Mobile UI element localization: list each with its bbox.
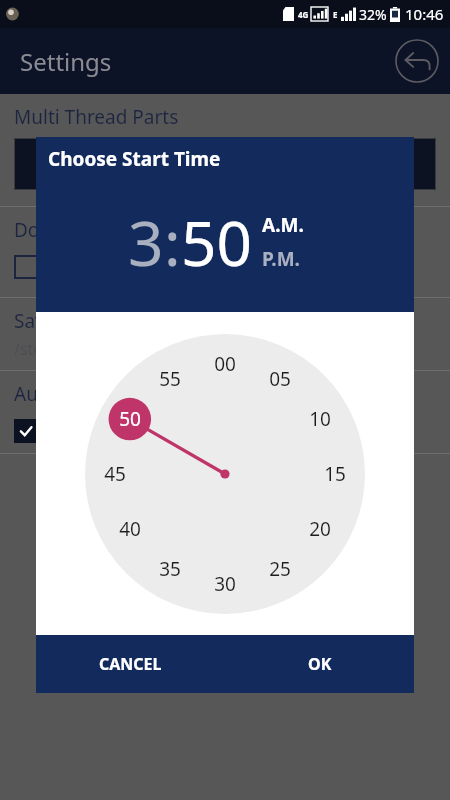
- staticText: 32%: [359, 5, 387, 24]
- staticText: P.M.: [262, 246, 300, 272]
- staticText: 45: [104, 461, 126, 487]
- staticText: 4G: [298, 9, 309, 20]
- button[interactable]: 40: [110, 509, 150, 549]
- staticText: CANCEL: [99, 653, 162, 675]
- staticText: 50: [119, 406, 141, 432]
- button[interactable]: P.M.: [262, 246, 300, 272]
- staticText: Auto Start: [14, 381, 104, 407]
- staticText: Save Location: [14, 308, 137, 334]
- button[interactable]: [14, 419, 38, 443]
- button[interactable]: 20: [300, 509, 340, 549]
- staticText: 10: [309, 406, 331, 432]
- staticText: 50: [181, 200, 252, 284]
- staticText: 30: [214, 571, 236, 597]
- staticText: 10:46: [405, 4, 444, 24]
- button[interactable]: 10: [300, 399, 340, 439]
- button[interactable]: CANCEL: [36, 635, 225, 693]
- staticText: Settings: [20, 45, 112, 78]
- button[interactable]: 50: [181, 200, 252, 284]
- staticText: /storage/emulated/0/Download: [14, 338, 252, 360]
- button[interactable]: [14, 138, 436, 190]
- staticText: 25: [269, 556, 291, 582]
- button[interactable]: Back: [394, 38, 440, 84]
- staticText: Multi Thread Parts: [14, 104, 179, 130]
- staticText: 20: [309, 516, 331, 542]
- button[interactable]: [14, 255, 38, 279]
- button[interactable]: 35: [150, 549, 190, 589]
- staticText: 05: [269, 366, 291, 392]
- staticText: Enabled: [48, 420, 113, 443]
- staticText: 35: [159, 556, 181, 582]
- staticText: 15: [324, 461, 346, 487]
- staticText: Download Automatically: [14, 217, 232, 243]
- button[interactable]: OK: [225, 635, 414, 693]
- staticText: 00: [214, 351, 236, 377]
- staticText: 40: [119, 516, 141, 542]
- button[interactable]: 00: [205, 344, 245, 384]
- button[interactable]: 25: [260, 549, 300, 589]
- staticText: A.M.: [262, 212, 304, 238]
- button[interactable]: 55: [150, 359, 190, 399]
- button[interactable]: 45: [95, 454, 135, 494]
- button[interactable]: 3: [128, 200, 164, 284]
- button[interactable]: 05: [260, 359, 300, 399]
- button[interactable]: A.M.: [262, 212, 304, 238]
- button[interactable]: 30: [205, 564, 245, 604]
- staticText: Choose Start Time: [48, 146, 221, 172]
- staticText: 55: [159, 366, 181, 392]
- staticText: 3: [128, 200, 164, 284]
- staticText: :: [164, 200, 181, 284]
- staticText: E: [333, 9, 338, 20]
- staticText: OK: [308, 653, 332, 675]
- button[interactable]: 15: [315, 454, 355, 494]
- button[interactable]: 50: [110, 399, 150, 439]
